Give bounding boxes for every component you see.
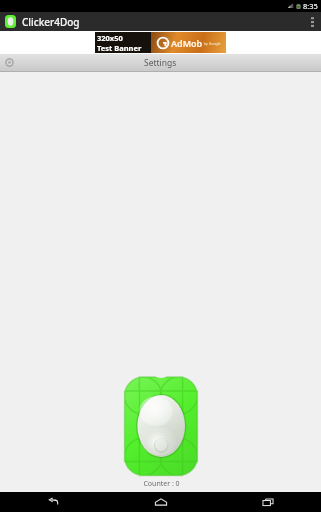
staticText: 8:35 — [303, 1, 318, 11]
staticText: 320x50 — [97, 33, 123, 43]
staticText: Clicker4Dog — [22, 15, 80, 29]
staticText: AdMob — [171, 37, 203, 49]
button[interactable]: Recent apps — [214, 492, 321, 512]
staticText: Settings — [144, 57, 177, 69]
staticText: by Google — [204, 41, 221, 46]
button[interactable]: Settings — [0, 54, 321, 71]
staticText: Counter : 0 — [143, 479, 180, 489]
button[interactable]: More options — [303, 12, 321, 31]
button[interactable]: Advertisement — [95, 32, 226, 53]
button[interactable]: Clicker button — [121, 374, 201, 477]
button[interactable]: Home — [107, 492, 214, 512]
staticText: Test Banner — [97, 43, 142, 53]
button[interactable]: Settings icon — [5, 58, 14, 67]
button[interactable]: Back — [0, 492, 107, 512]
